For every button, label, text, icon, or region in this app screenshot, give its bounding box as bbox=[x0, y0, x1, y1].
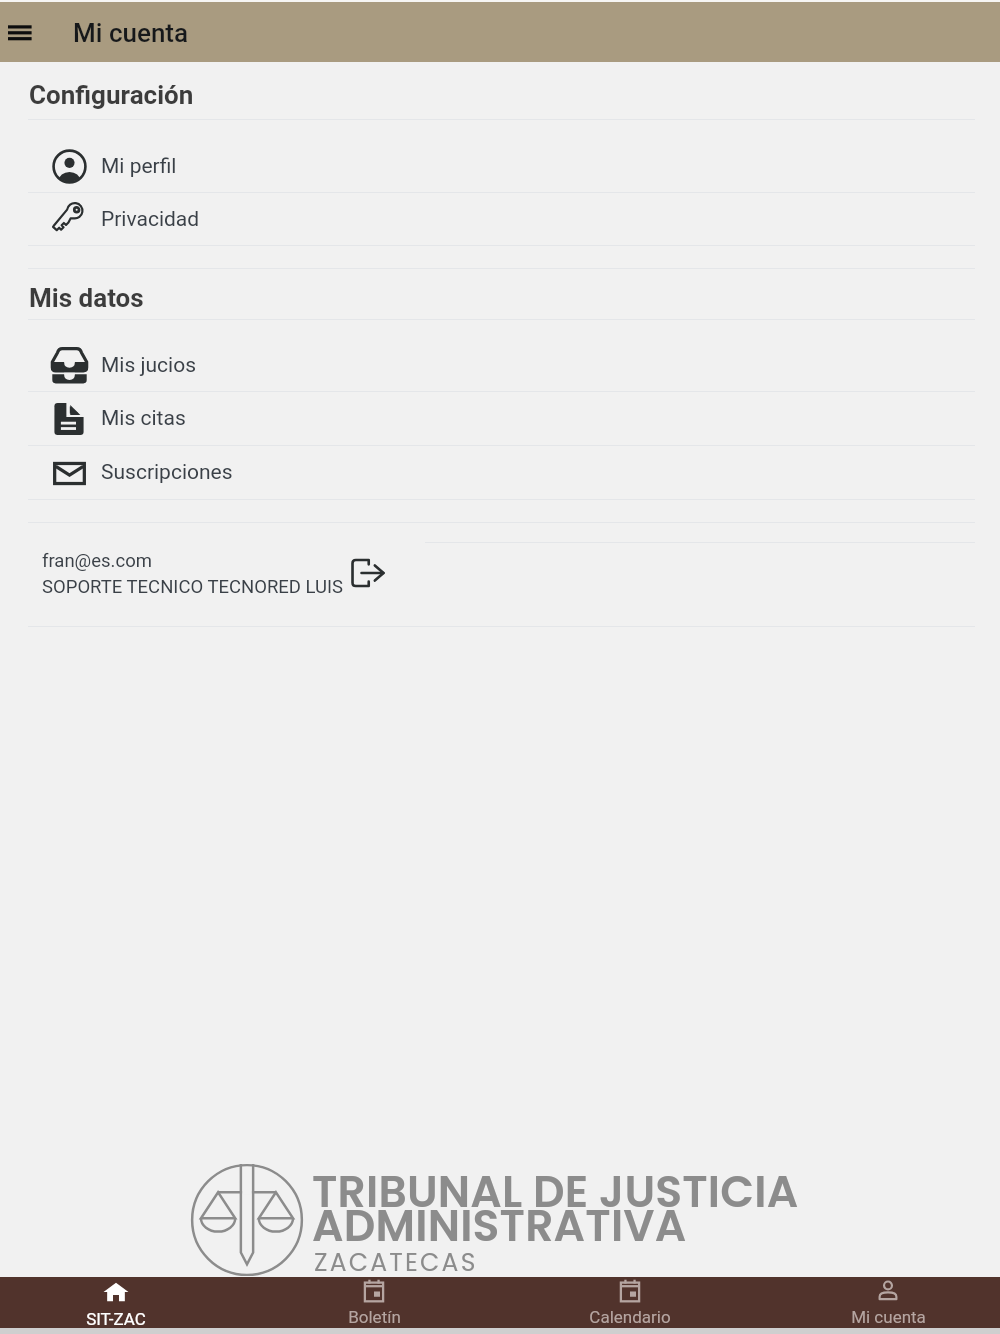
staticText: Calendario bbox=[589, 1307, 671, 1327]
button[interactable]: Menu bbox=[0, 8, 44, 54]
button[interactable]: Mi perfil bbox=[0, 120, 1000, 192]
staticText: Mi cuenta bbox=[851, 1307, 926, 1327]
staticText: ADMINISTRATIVA bbox=[312, 1195, 687, 1257]
staticText: ZACATECAS bbox=[314, 1245, 478, 1280]
staticText: Mis datos bbox=[29, 283, 144, 313]
button[interactable]: Mis citas bbox=[0, 392, 1000, 445]
button[interactable]: Mis jucios bbox=[0, 320, 1000, 391]
staticText: Mi cuenta bbox=[73, 18, 189, 48]
staticText: Suscripciones bbox=[101, 460, 233, 485]
button[interactable]: Mi cuenta bbox=[759, 1277, 1000, 1328]
staticText: Boletín bbox=[348, 1307, 401, 1327]
staticText: TRIBUNAL DE JUSTICIA bbox=[312, 1161, 799, 1223]
staticText: Privacidad bbox=[101, 207, 200, 232]
staticText: Mis jucios bbox=[101, 353, 197, 378]
button[interactable]: Cerrar sesión bbox=[346, 551, 390, 595]
staticText: Mis citas bbox=[101, 406, 186, 431]
staticText: Mi perfil bbox=[101, 154, 177, 179]
staticText: Configuración bbox=[29, 80, 194, 110]
button[interactable]: Boletín bbox=[245, 1277, 503, 1328]
button[interactable]: SIT-ZAC bbox=[0, 1277, 245, 1328]
button[interactable]: Calendario bbox=[501, 1277, 759, 1328]
button[interactable]: fran@es.com bbox=[0, 523, 1000, 626]
staticText: SOPORTE TECNICO TECNORED LUIS bbox=[42, 576, 344, 598]
button[interactable]: Suscripciones bbox=[0, 446, 1000, 499]
button[interactable]: Privacidad bbox=[0, 193, 1000, 245]
staticText: SIT-ZAC bbox=[86, 1309, 146, 1328]
staticText: fran@es.com bbox=[42, 550, 152, 572]
